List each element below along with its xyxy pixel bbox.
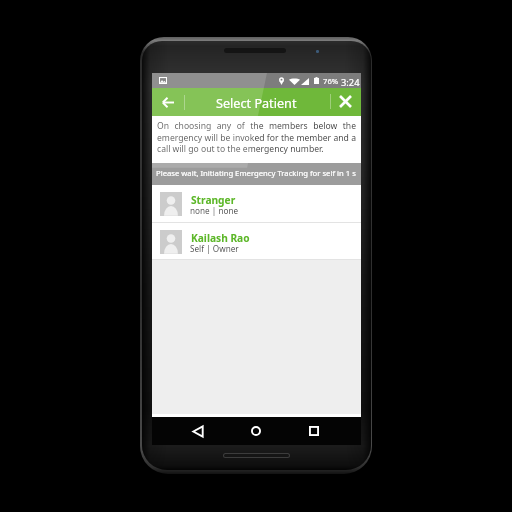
staticText: 76% bbox=[323, 76, 339, 86]
button[interactable]: Back bbox=[186, 417, 210, 445]
staticText: 3:24 bbox=[341, 76, 360, 89]
staticText: Stranger bbox=[191, 193, 236, 207]
staticText: Select Patient bbox=[216, 94, 297, 111]
button[interactable]: Close bbox=[332, 88, 361, 116]
staticText: Self | Owner bbox=[190, 243, 239, 254]
button[interactable]: Recents bbox=[302, 417, 326, 445]
staticText: Please wait, Initiating Emergency Tracki… bbox=[156, 168, 356, 178]
button[interactable]: Home bbox=[244, 417, 268, 445]
button[interactable]: Kailash Rao bbox=[152, 223, 361, 259]
staticText: none | none bbox=[190, 205, 239, 216]
button[interactable]: Back bbox=[152, 88, 184, 116]
staticText: On choosing any of the members below the… bbox=[157, 120, 356, 154]
staticText: Kailash Rao bbox=[191, 231, 250, 245]
button[interactable]: Stranger bbox=[152, 185, 361, 222]
